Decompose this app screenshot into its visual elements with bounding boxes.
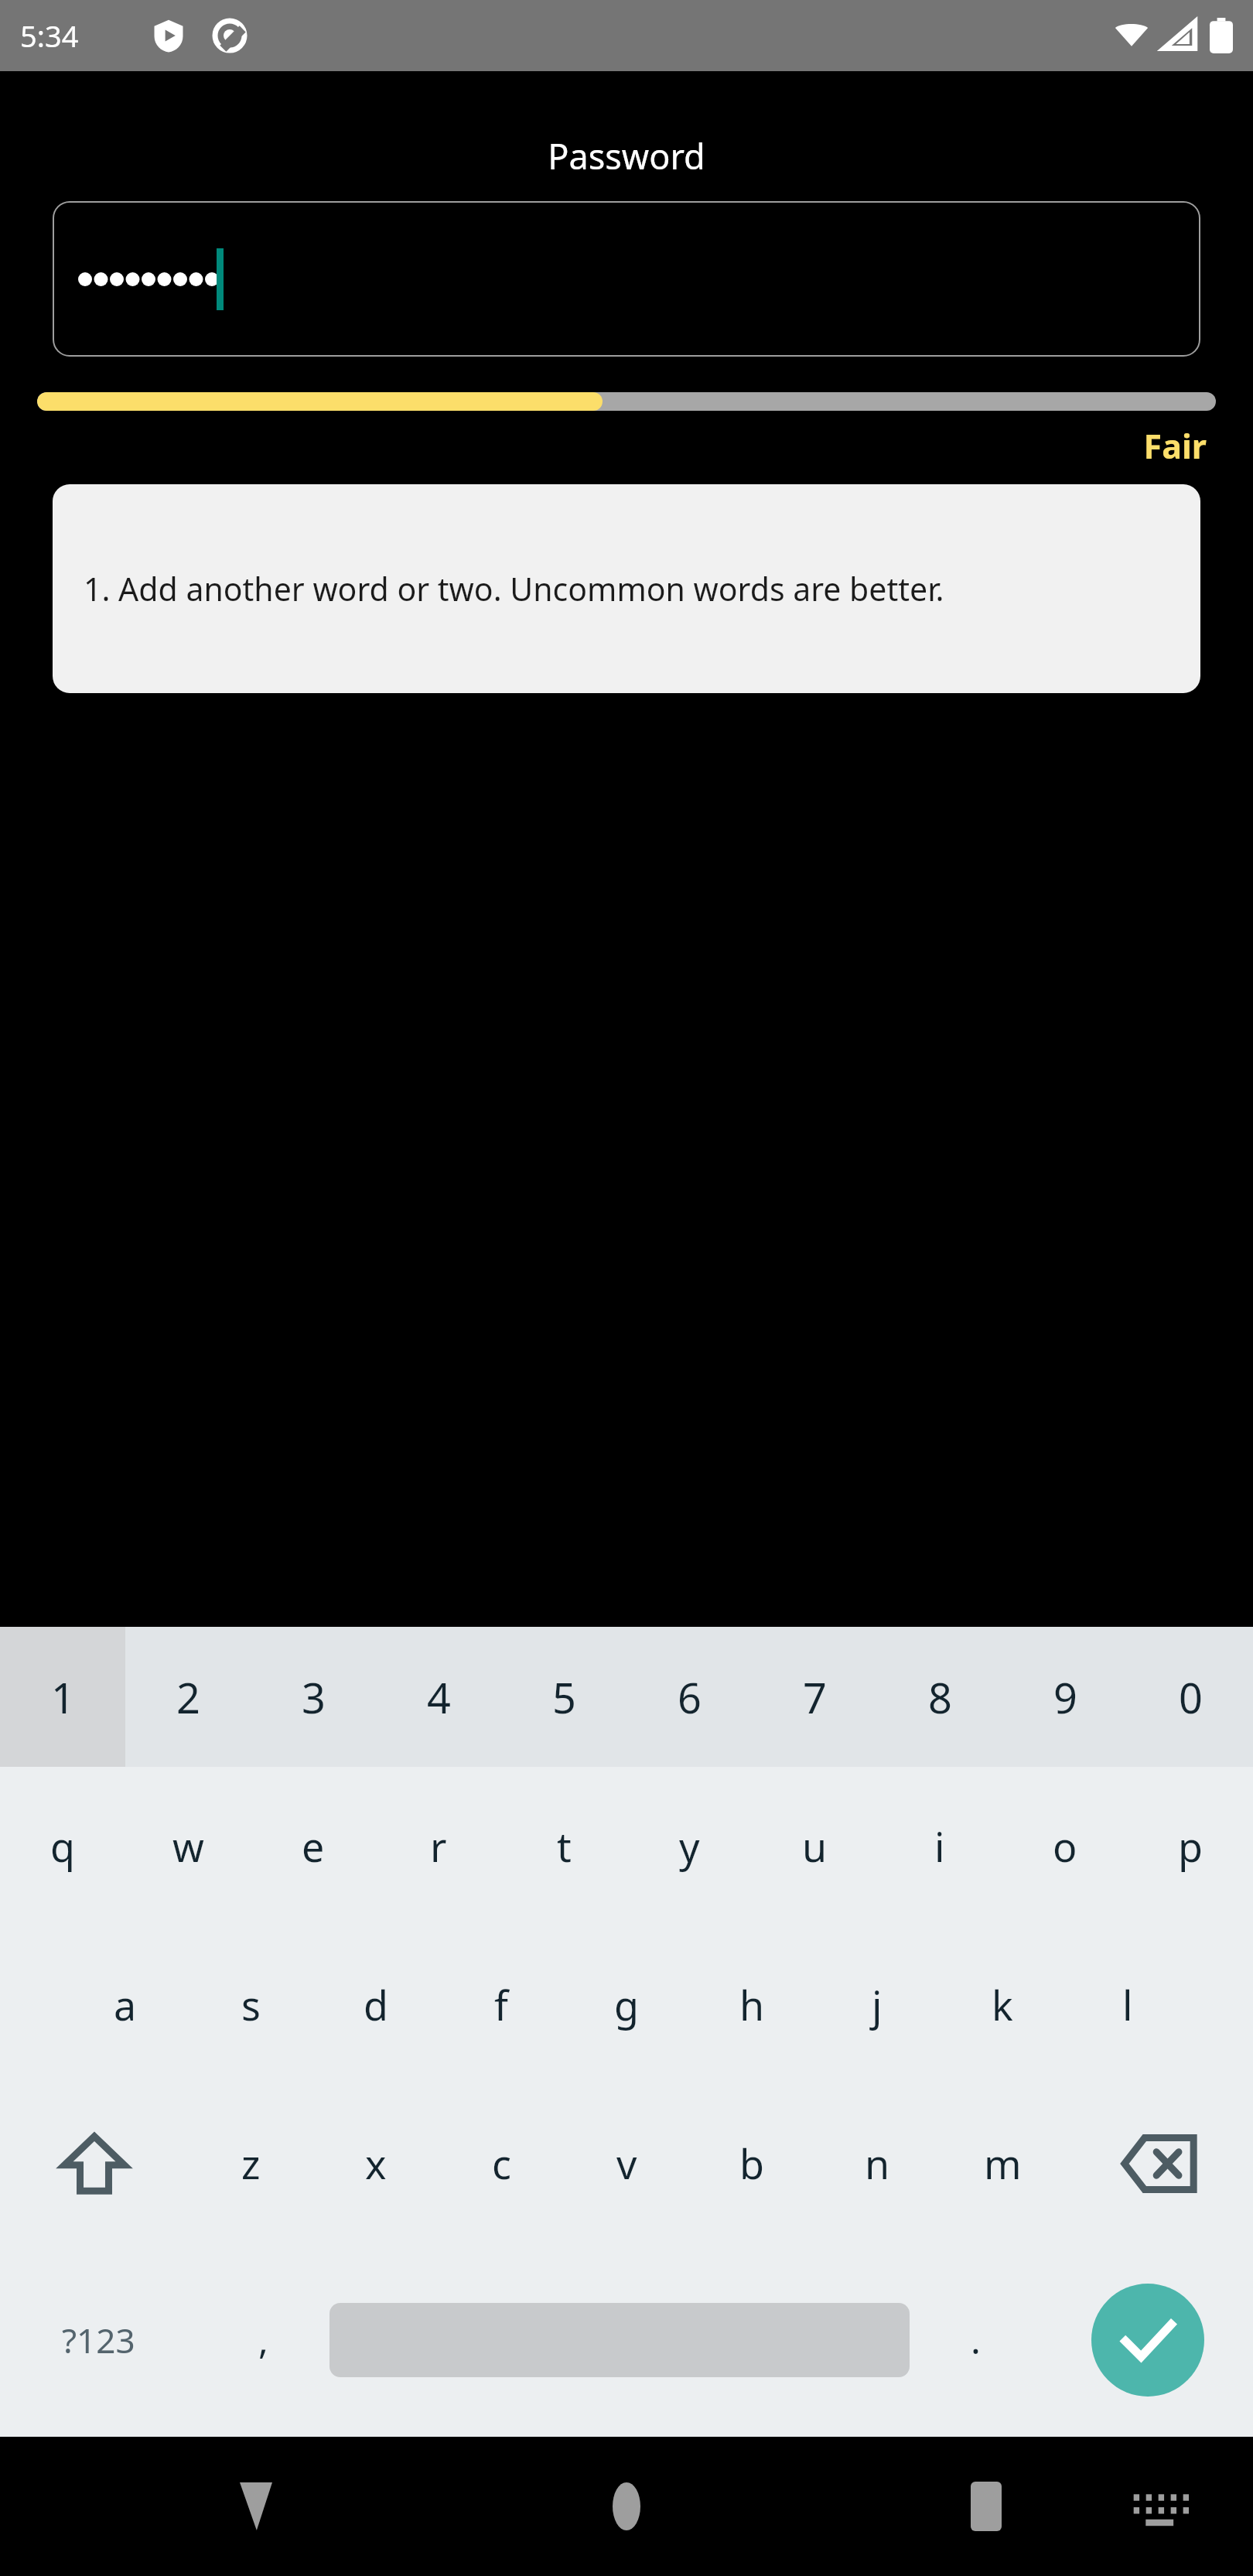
button[interactable]: . xyxy=(910,2243,1042,2437)
staticText: 4 xyxy=(427,1669,451,1726)
button[interactable]: v xyxy=(564,2084,689,2243)
staticText: 1. Add another word or two. Uncommon wor… xyxy=(84,567,944,610)
button[interactable]: Backspace xyxy=(1065,2084,1253,2243)
button[interactable]: t xyxy=(501,1767,626,1925)
staticText: b xyxy=(739,2136,764,2191)
button[interactable]: j xyxy=(814,1925,940,2084)
staticText: f xyxy=(494,1977,508,2032)
button[interactable]: e xyxy=(251,1767,376,1925)
staticText: g xyxy=(614,1977,639,2032)
staticText: 0 xyxy=(1179,1669,1203,1726)
staticText: w xyxy=(172,1819,204,1874)
staticText: h xyxy=(739,1977,765,2032)
staticText: d xyxy=(364,1977,388,2032)
button[interactable]: Enter xyxy=(1042,2243,1253,2437)
button[interactable]: k xyxy=(940,1925,1065,2084)
staticText: l xyxy=(1122,1977,1133,2032)
button[interactable]: 9 xyxy=(1002,1627,1128,1767)
button[interactable]: c xyxy=(439,2084,564,2243)
staticText: . xyxy=(971,2315,981,2365)
button[interactable]: 0 xyxy=(1128,1627,1253,1767)
staticText: , xyxy=(258,2315,268,2365)
staticText: 8 xyxy=(928,1669,952,1726)
button[interactable]: Switch keyboard xyxy=(1118,2464,1203,2549)
button[interactable]: u xyxy=(752,1767,877,1925)
staticText: 9 xyxy=(1053,1669,1077,1726)
staticText: 6 xyxy=(678,1669,702,1726)
button[interactable]: n xyxy=(814,2084,940,2243)
staticText: a xyxy=(114,1977,137,2032)
staticText: k xyxy=(992,1977,1013,2032)
staticText: 3 xyxy=(302,1669,326,1726)
button[interactable]: 2 xyxy=(125,1627,251,1767)
button[interactable]: g xyxy=(564,1925,689,2084)
staticText: ?123 xyxy=(62,2317,135,2363)
button[interactable]: Shift xyxy=(0,2084,188,2243)
button[interactable]: Back xyxy=(213,2464,299,2549)
staticText: x xyxy=(365,2136,387,2191)
button[interactable]: b xyxy=(689,2084,814,2243)
button[interactable]: 8 xyxy=(877,1627,1002,1767)
button[interactable]: s xyxy=(188,1925,313,2084)
staticText: y xyxy=(679,1819,700,1874)
staticText: v xyxy=(616,2136,637,2191)
button[interactable]: 3 xyxy=(251,1627,376,1767)
button[interactable]: y xyxy=(626,1767,752,1925)
staticText: 5 xyxy=(552,1669,576,1726)
button[interactable]: 7 xyxy=(752,1627,877,1767)
staticText: j xyxy=(872,1977,883,2032)
staticText: u xyxy=(802,1819,828,1874)
button[interactable] xyxy=(53,201,1200,357)
button[interactable]: 1 xyxy=(0,1627,125,1767)
staticText: 1 xyxy=(51,1669,75,1726)
button[interactable]: Recent apps xyxy=(944,2464,1029,2549)
button[interactable]: m xyxy=(940,2084,1065,2243)
button[interactable]: 5 xyxy=(501,1627,626,1767)
button[interactable]: Space xyxy=(329,2243,910,2437)
staticText: e xyxy=(302,1819,325,1874)
button[interactable]: q xyxy=(0,1767,125,1925)
button[interactable]: x xyxy=(313,2084,439,2243)
staticText: 2 xyxy=(176,1669,200,1726)
staticText: Password xyxy=(0,132,1253,179)
staticText: Fair xyxy=(0,423,1207,469)
staticText: 5:34 xyxy=(20,15,79,56)
staticText: 7 xyxy=(803,1669,827,1726)
staticText: q xyxy=(50,1819,75,1874)
staticText: c xyxy=(492,2136,511,2191)
staticText: m xyxy=(984,2136,1022,2191)
button[interactable]: z xyxy=(188,2084,313,2243)
button[interactable]: i xyxy=(877,1767,1002,1925)
button[interactable]: l xyxy=(1065,1925,1190,2084)
button[interactable]: d xyxy=(313,1925,439,2084)
staticText: n xyxy=(865,2136,890,2191)
staticText: i xyxy=(934,1819,945,1874)
button[interactable]: Home xyxy=(584,2464,669,2549)
button[interactable]: 4 xyxy=(376,1627,501,1767)
button[interactable]: r xyxy=(376,1767,501,1925)
button[interactable]: 1. Add another word or two. Uncommon wor… xyxy=(53,484,1200,693)
button[interactable]: o xyxy=(1002,1767,1128,1925)
staticText: z xyxy=(241,2136,261,2191)
staticText: r xyxy=(430,1819,447,1874)
staticText: s xyxy=(241,1977,261,2032)
button[interactable]: p xyxy=(1128,1767,1253,1925)
button[interactable]: h xyxy=(689,1925,814,2084)
staticText: o xyxy=(1053,1819,1077,1874)
button[interactable]: a xyxy=(63,1925,188,2084)
button[interactable]: w xyxy=(125,1767,251,1925)
staticText: t xyxy=(557,1819,572,1874)
button[interactable]: ?123 xyxy=(0,2243,197,2437)
button[interactable]: f xyxy=(439,1925,564,2084)
button[interactable]: , xyxy=(197,2243,329,2437)
staticText: p xyxy=(1178,1819,1203,1874)
button[interactable]: 6 xyxy=(626,1627,752,1767)
